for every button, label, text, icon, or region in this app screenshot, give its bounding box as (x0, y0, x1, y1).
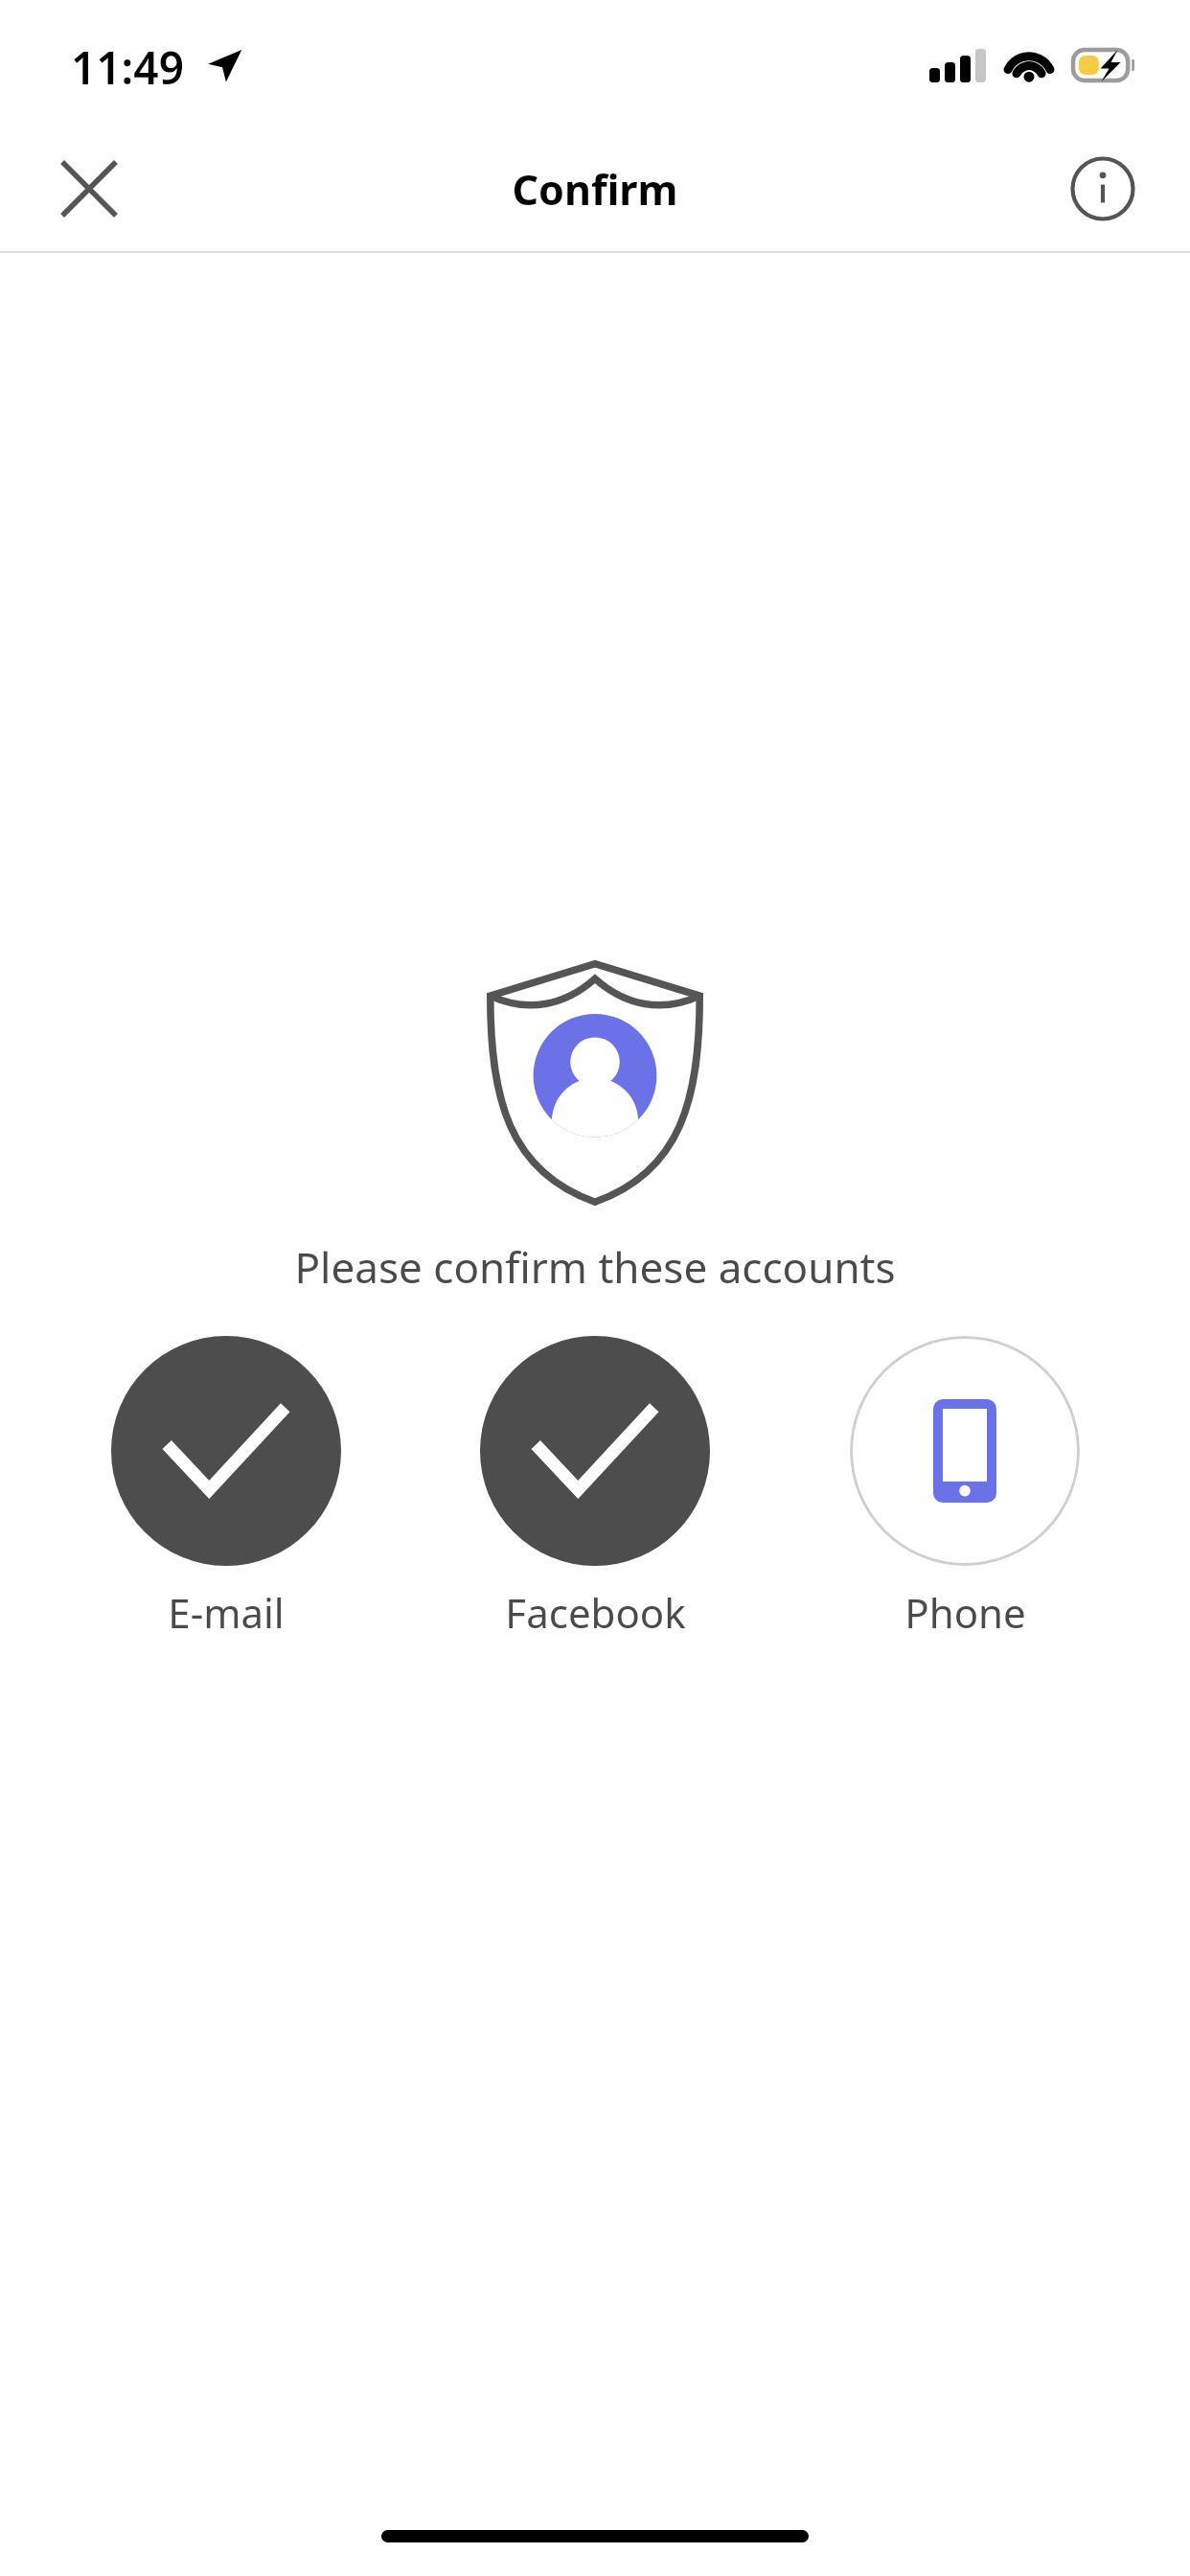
staticText: Facebook (505, 1585, 686, 1640)
staticText: Please confirm these accounts (294, 1238, 896, 1296)
staticText: Phone (904, 1585, 1026, 1640)
button[interactable]: Information (1041, 126, 1165, 251)
button[interactable]: Facebook (451, 1336, 739, 1640)
button[interactable]: Close (27, 126, 151, 251)
staticText: Confirm (512, 161, 678, 218)
staticText: 11:49 (71, 37, 184, 98)
button[interactable]: E-mail (82, 1336, 370, 1640)
staticText: E-mail (168, 1585, 285, 1640)
button[interactable]: Phone (821, 1336, 1109, 1640)
